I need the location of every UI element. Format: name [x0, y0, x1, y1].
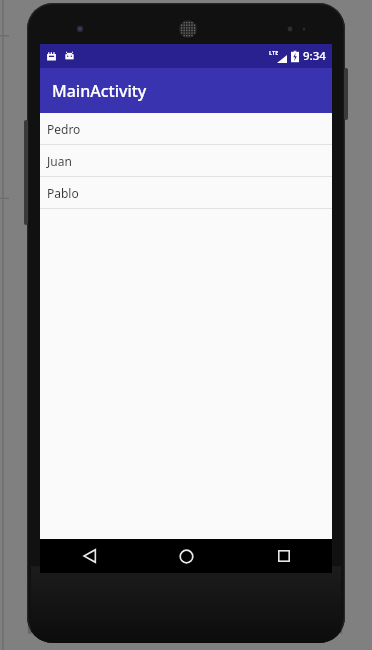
staticText: 9:34: [303, 48, 326, 64]
staticText: MainActivity: [52, 80, 147, 102]
button[interactable]: Back: [40, 539, 138, 573]
button[interactable]: Home: [138, 539, 235, 573]
button[interactable]: Recent apps: [235, 539, 332, 573]
other: Volume: [24, 120, 28, 225]
staticText: Juan: [47, 153, 72, 169]
staticText: LTE: [269, 49, 279, 56]
button[interactable]: Pedro: [40, 113, 332, 144]
other: Power: [344, 68, 348, 120]
staticText: Pedro: [47, 121, 81, 137]
button[interactable]: Pablo: [40, 177, 332, 208]
button[interactable]: Juan: [40, 145, 332, 176]
staticText: Pablo: [47, 185, 79, 201]
button[interactable]: MainActivity: [40, 68, 332, 113]
